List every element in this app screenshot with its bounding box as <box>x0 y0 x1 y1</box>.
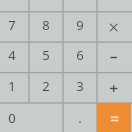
button[interactable]: 3 <box>63 73 97 103</box>
button[interactable]: 1 <box>0 73 29 103</box>
button[interactable]: 0 <box>0 103 63 132</box>
button[interactable]: 7 <box>0 12 29 42</box>
button[interactable]: 6 <box>63 42 97 72</box>
button[interactable]: 8 <box>29 12 63 42</box>
button[interactable]: 4 <box>0 42 29 72</box>
staticText: 2 <box>42 77 50 95</box>
button[interactable]: Multiply <box>97 12 131 42</box>
staticText: 3 <box>76 77 84 95</box>
staticText: 8 <box>42 16 50 34</box>
button[interactable]: 5 <box>29 42 63 72</box>
staticText: 1 <box>8 77 16 95</box>
staticText: 6 <box>76 46 84 64</box>
staticText: 7 <box>8 16 16 34</box>
button[interactable]: Equals <box>97 103 131 132</box>
staticText: . <box>78 109 82 127</box>
button[interactable]: . <box>63 103 97 132</box>
button[interactable]: 2 <box>29 73 63 103</box>
staticText: 0 <box>8 109 16 127</box>
staticText: 5 <box>42 46 50 64</box>
button[interactable]: Add <box>97 73 131 103</box>
staticText: 4 <box>8 46 16 64</box>
button[interactable]: 9 <box>63 12 97 42</box>
button[interactable]: Subtract <box>97 42 131 72</box>
staticText: 9 <box>76 16 84 34</box>
